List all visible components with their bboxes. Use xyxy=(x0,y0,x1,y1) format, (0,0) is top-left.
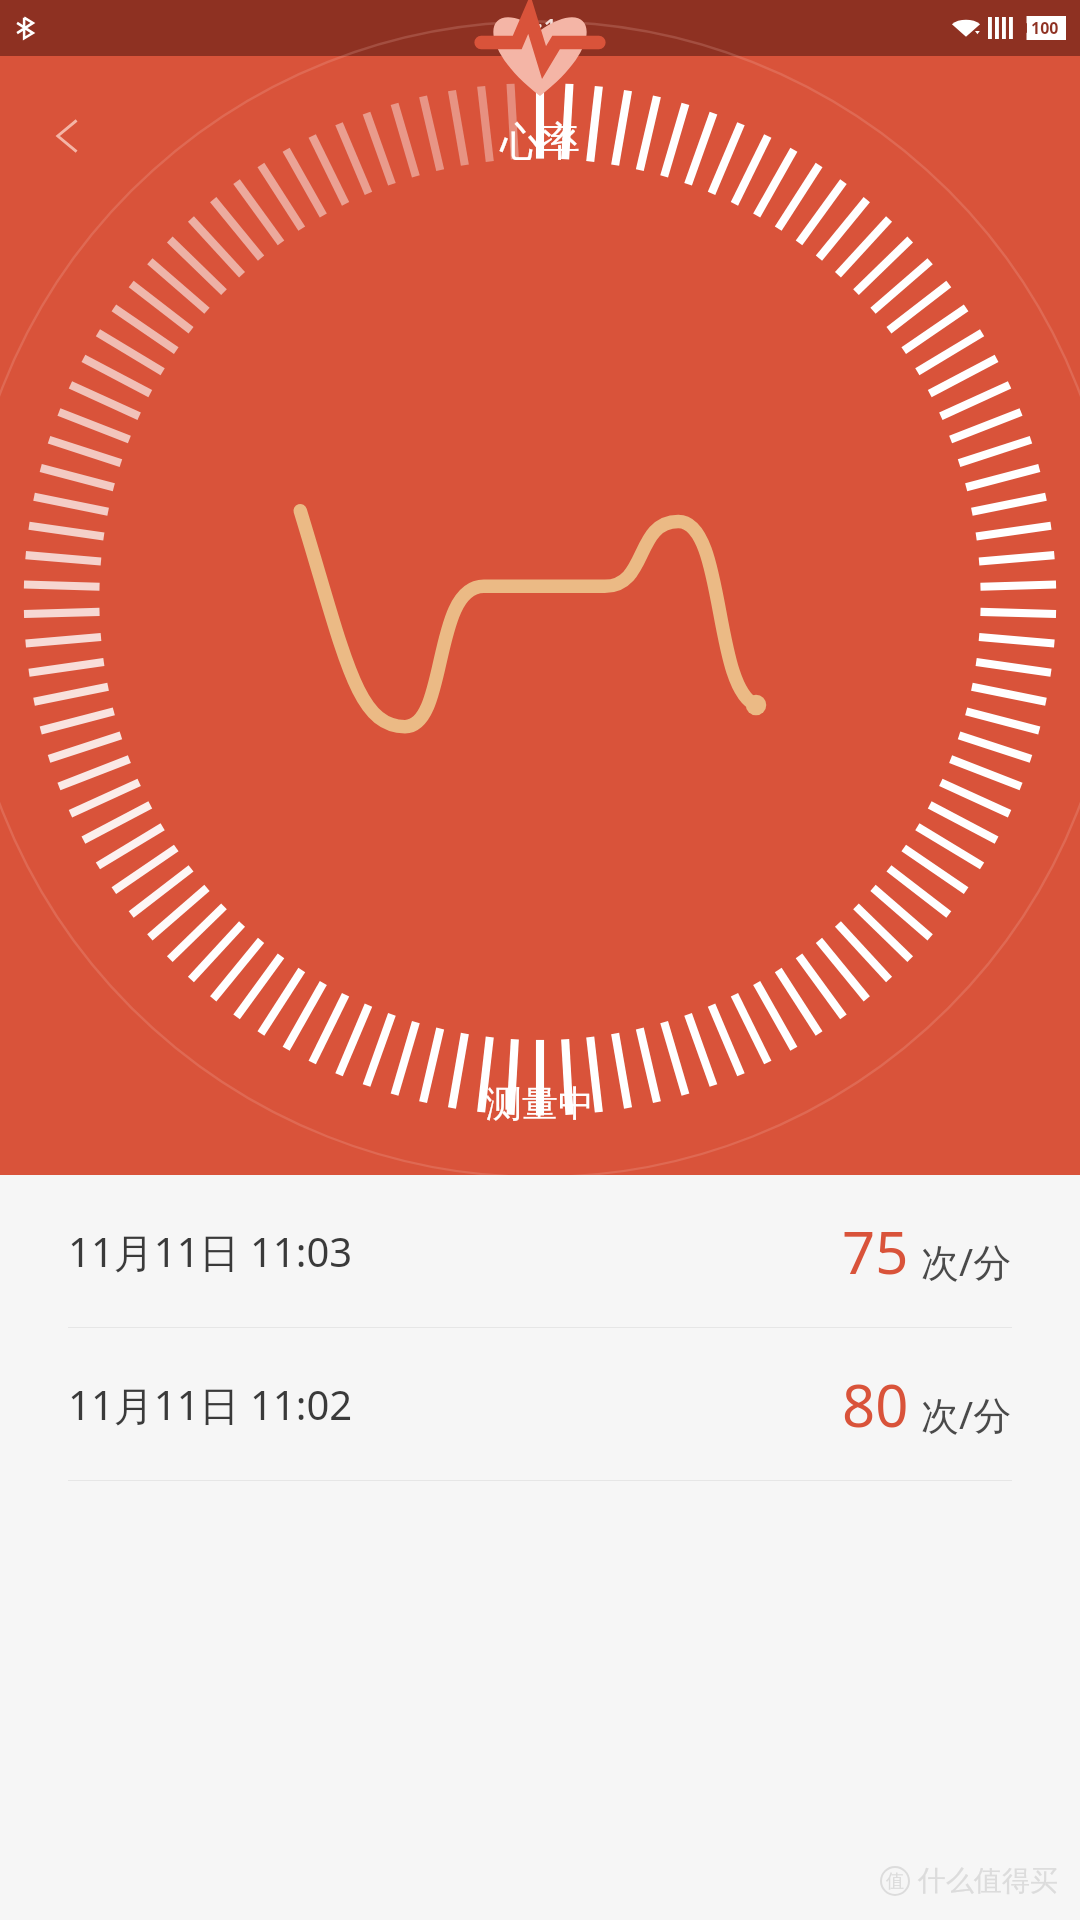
staticText: 值 xyxy=(886,1870,904,1893)
staticText: 75 xyxy=(842,1212,909,1291)
staticText: 测量中 xyxy=(486,1081,594,1126)
staticText: 11月11日 11:02 xyxy=(68,1377,353,1432)
staticText: 次/分 xyxy=(921,1388,1012,1440)
staticText: 12:18 xyxy=(505,10,575,47)
staticText: 心率 xyxy=(500,116,580,166)
staticText: 什么值得买 xyxy=(918,1863,1058,1898)
button[interactable]: 11月11日 11:03 xyxy=(0,1175,1080,1328)
staticText: 11月11日 11:03 xyxy=(68,1224,353,1279)
button[interactable]: Back xyxy=(30,98,106,174)
button[interactable]: 11月11日 11:02 xyxy=(0,1328,1080,1481)
staticText: 80 xyxy=(842,1365,909,1444)
staticText: 100 xyxy=(1031,17,1059,39)
staticText: 次/分 xyxy=(921,1235,1012,1287)
